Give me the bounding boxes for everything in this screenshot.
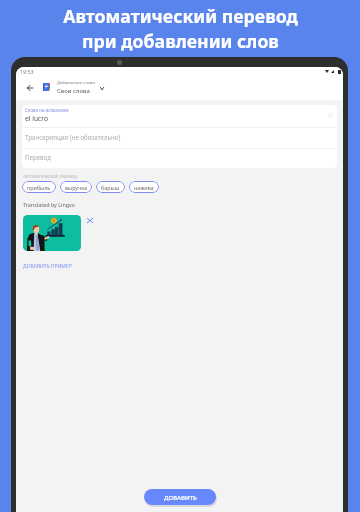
staticText: Транскрипция (не обязательно) xyxy=(25,133,121,141)
staticText: Добавление слова xyxy=(57,80,95,86)
staticText: нажива xyxy=(134,184,154,191)
staticText: Перевод xyxy=(25,153,51,161)
button[interactable]: Clear xyxy=(328,113,333,118)
staticText: при добавлении слов xyxy=(82,29,279,53)
button[interactable]: нажива xyxy=(129,181,159,193)
button[interactable]: барыш xyxy=(96,181,125,193)
button[interactable]: ДОБАВИТЬ xyxy=(144,489,216,505)
staticText: 19:53 xyxy=(20,68,34,75)
staticText: Автоматический перевод xyxy=(23,173,78,179)
staticText: ДОБАВИТЬ xyxy=(164,493,197,501)
button[interactable]: Back xyxy=(21,81,35,95)
staticText: Translated by Lingvo xyxy=(23,201,76,208)
button[interactable] xyxy=(23,215,81,251)
staticText: выручка xyxy=(65,184,87,191)
staticText: el lucro xyxy=(25,114,48,123)
button[interactable]: прибыль xyxy=(22,181,56,193)
staticText: Свои слова xyxy=(57,87,90,95)
staticText: прибыль xyxy=(27,184,51,191)
button[interactable]: выручка xyxy=(60,181,92,193)
staticText: Слово на испанском xyxy=(25,107,69,113)
staticText: Автоматический перевод xyxy=(63,4,298,28)
staticText: ДОБАВИТЬ ПРИМЕР xyxy=(23,263,72,270)
staticText: барыш xyxy=(101,184,120,191)
button[interactable]: ДОБАВИТЬ ПРИМЕР xyxy=(22,263,73,270)
button[interactable]: Remove image xyxy=(84,215,95,226)
